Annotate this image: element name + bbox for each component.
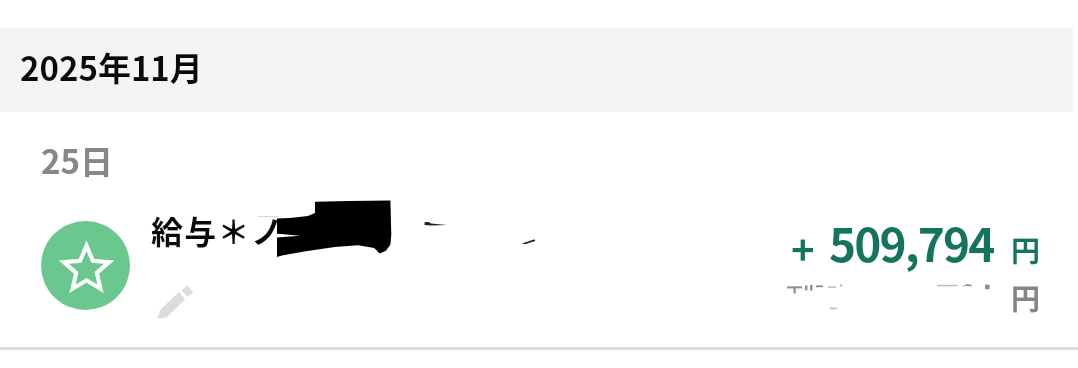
button[interactable]: 2025年11月 <box>0 28 1073 112</box>
staticText: 給与＊ノ <box>151 207 285 253</box>
staticText: + <box>791 219 815 277</box>
staticText: 25日 <box>41 136 113 184</box>
staticText: 509,794 <box>829 209 994 276</box>
staticText: 2025年11月 <box>20 43 203 91</box>
button[interactable]: Edit <box>153 282 197 324</box>
button[interactable]: 給与＊ノ +509,794 円 <box>0 190 1078 347</box>
other: Category <box>41 221 130 310</box>
staticText: 円 <box>1011 276 1041 318</box>
staticText: 円 <box>1011 228 1041 270</box>
